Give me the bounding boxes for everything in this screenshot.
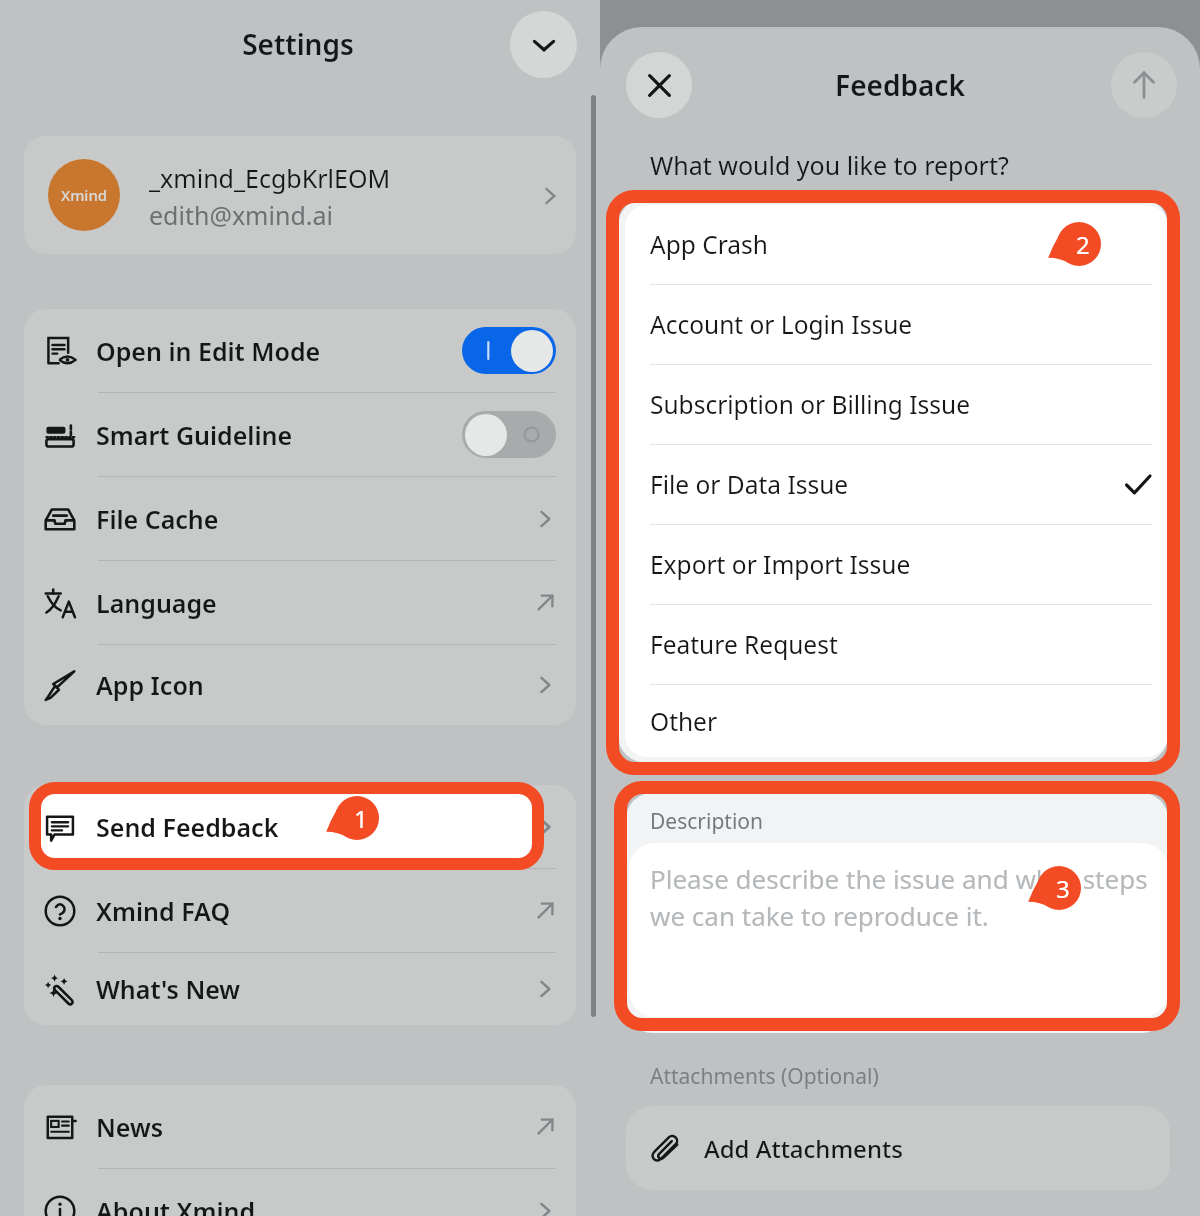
staticText: _xmind_EcgbKrlEOM	[149, 161, 391, 195]
button[interactable]: Smart Guideline	[24, 393, 576, 476]
staticText: Account or Login Issue	[650, 308, 1108, 341]
button[interactable]: Xmind FAQ	[24, 869, 576, 952]
staticText: What would you like to report?	[650, 148, 1009, 182]
button[interactable]: About Xmind	[24, 1169, 576, 1216]
staticText: 3	[1056, 872, 1070, 905]
button[interactable]: Subscription or Billing Issue	[625, 365, 1168, 444]
staticText: edith@xmind.ai	[149, 198, 333, 232]
button[interactable]	[462, 327, 556, 374]
button[interactable]: Send Feedback	[24, 785, 576, 868]
staticText: News	[96, 1110, 514, 1144]
button[interactable]: Collapse	[510, 11, 577, 78]
button[interactable]: Submit	[1111, 52, 1177, 118]
staticText: Please describe the issue and what steps…	[650, 861, 1148, 934]
staticText: Description	[650, 807, 764, 836]
staticText: App Icon	[96, 668, 514, 702]
button[interactable]: Account or Login Issue	[625, 285, 1168, 364]
staticText: Feature Request	[650, 628, 1108, 661]
staticText: Export or Import Issue	[650, 548, 1108, 581]
button[interactable]: App Crash	[625, 205, 1168, 284]
staticText: Feedback	[600, 66, 1200, 104]
staticText: Xmind	[61, 185, 108, 205]
staticText: What's New	[96, 972, 514, 1006]
staticText: Send Feedback	[96, 810, 514, 844]
staticText: About Xmind	[96, 1194, 514, 1216]
staticText: Language	[96, 586, 514, 620]
staticText: Other	[650, 705, 1108, 738]
staticText: Smart Guideline	[96, 418, 442, 452]
staticText: Add Attachments	[704, 1132, 903, 1165]
staticText: File Cache	[96, 502, 514, 536]
button[interactable]: Please describe the issue and what steps…	[629, 843, 1168, 1017]
button[interactable]: Feature Request	[625, 605, 1168, 684]
button[interactable]: Add Attachments	[626, 1106, 1170, 1190]
button[interactable]: Send Feedback	[24, 785, 576, 868]
button[interactable]: Language	[24, 561, 576, 644]
staticText: Open in Edit Mode	[96, 334, 442, 368]
button[interactable]: News	[24, 1085, 576, 1168]
staticText: 2	[1076, 228, 1090, 261]
button[interactable]: What's New	[24, 953, 576, 1025]
staticText: File or Data Issue	[650, 468, 1108, 501]
staticText: Xmind FAQ	[96, 894, 514, 928]
button[interactable]: Open in Edit Mode	[24, 309, 576, 392]
staticText: Attachments (Optional)	[650, 1062, 879, 1091]
button[interactable]: Other	[625, 685, 1168, 757]
staticText: Send Feedback	[96, 810, 514, 844]
button[interactable]: Xmind	[24, 136, 576, 254]
staticText: 1	[354, 802, 368, 835]
button[interactable]	[462, 411, 556, 458]
button[interactable]: Export or Import Issue	[625, 525, 1168, 604]
button[interactable]: File Cache	[24, 477, 576, 560]
button[interactable]: App Icon	[24, 645, 576, 725]
button[interactable]: File or Data Issue	[625, 445, 1168, 524]
staticText: App Crash	[650, 228, 1108, 261]
staticText: Settings	[0, 25, 596, 63]
button[interactable]: Close	[626, 52, 692, 118]
staticText: Subscription or Billing Issue	[650, 388, 1108, 421]
